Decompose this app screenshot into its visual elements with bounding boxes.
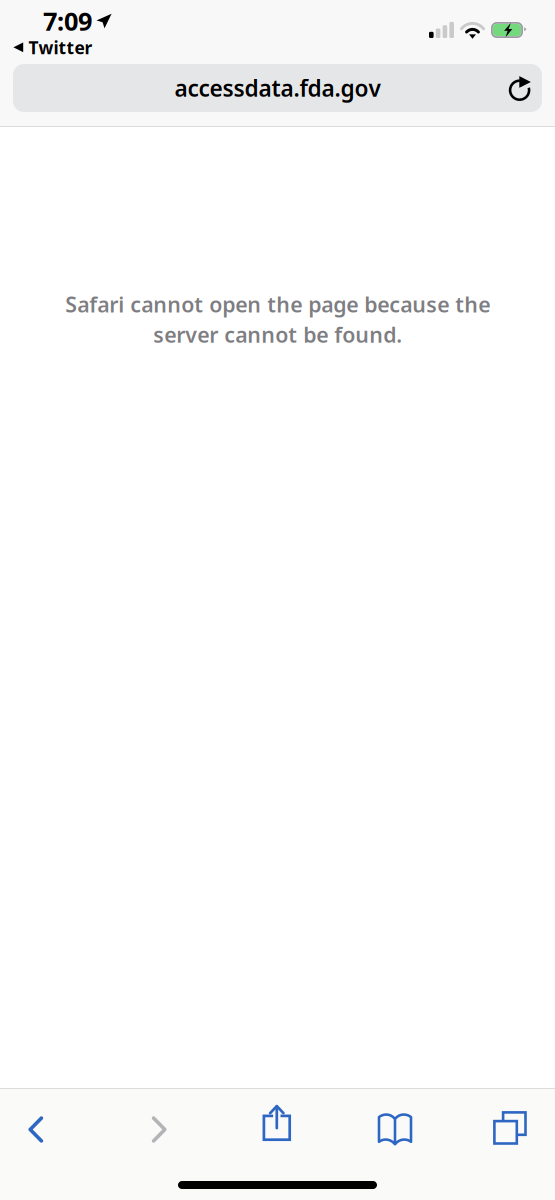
staticText: accessdata.fda.gov [174, 73, 380, 103]
button[interactable]: accessdata.fda.gov [13, 64, 542, 112]
staticText: 7:09 [43, 4, 92, 38]
button[interactable]: Tabs [474, 1100, 546, 1156]
button[interactable]: Twitter [13, 36, 92, 59]
staticText: Safari cannot open the page because the … [65, 290, 490, 349]
button[interactable]: Share [241, 1095, 313, 1151]
staticText: Twitter [28, 36, 92, 59]
button[interactable]: Back [0, 1102, 72, 1158]
button[interactable]: Bookmarks [359, 1101, 431, 1157]
button[interactable]: Forward [123, 1102, 195, 1158]
button[interactable]: Reload [496, 64, 542, 112]
